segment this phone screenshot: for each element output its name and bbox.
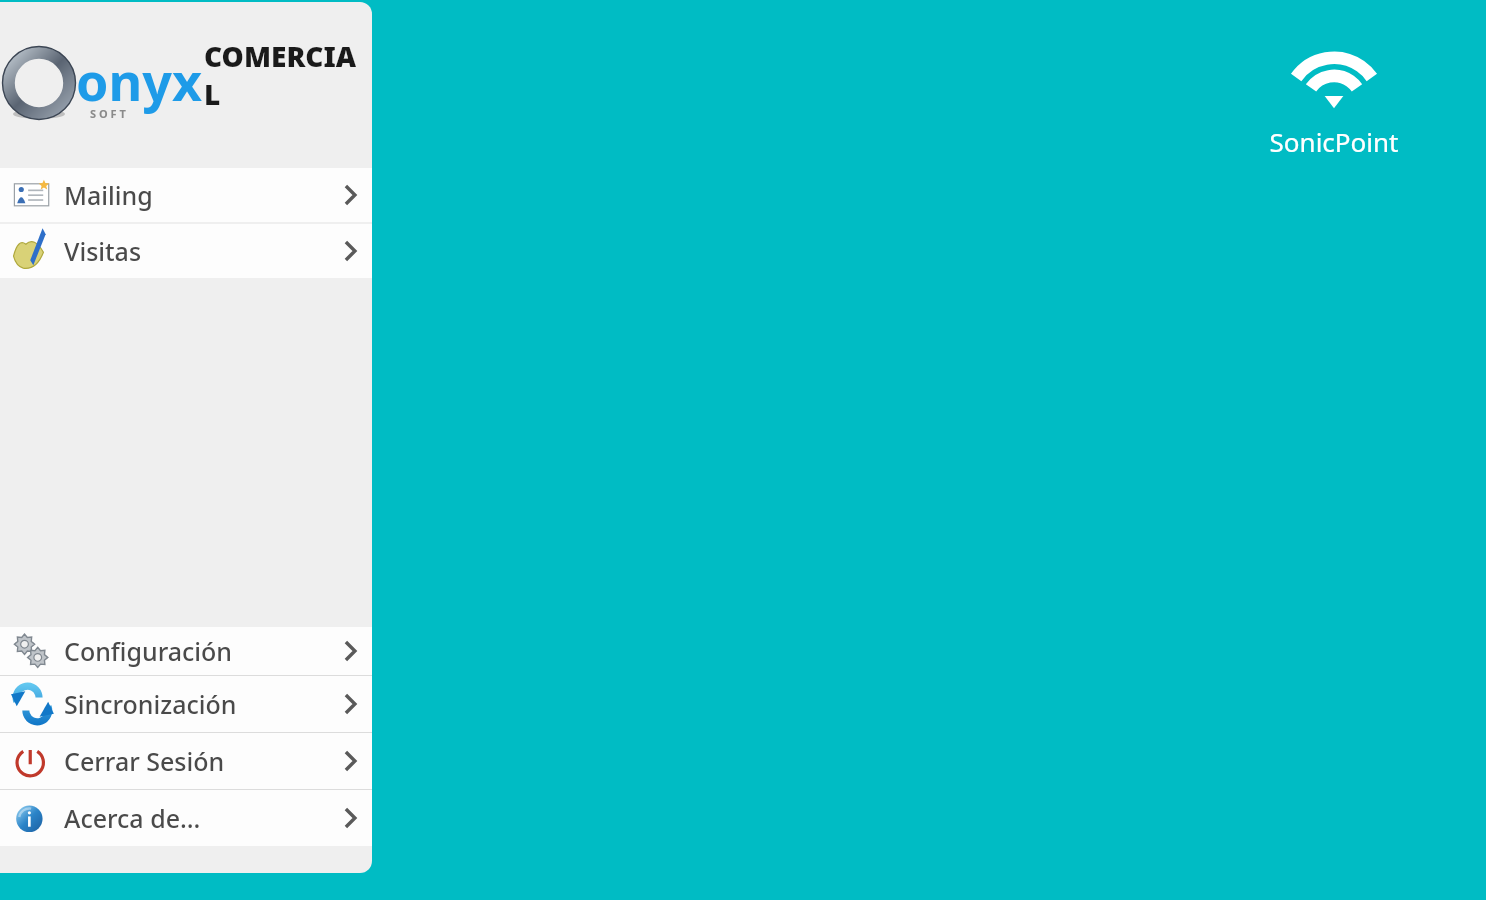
button[interactable]: Acerca de...	[0, 790, 372, 846]
staticText: Configuración	[64, 634, 233, 668]
staticText: Sincronización	[64, 687, 237, 721]
staticText: onyx	[76, 45, 203, 116]
button[interactable]: Sincronización	[0, 676, 372, 732]
button[interactable]: Mailing	[0, 168, 372, 222]
staticText: Cerrar Sesión	[64, 744, 225, 778]
staticText: Acerca de...	[64, 801, 201, 835]
staticText: S O F T	[90, 106, 126, 121]
button[interactable]: Cerrar Sesión	[0, 733, 372, 789]
staticText: SonicPoint	[1258, 124, 1410, 159]
button[interactable]: Configuración	[0, 627, 372, 675]
staticText: Visitas	[64, 234, 142, 268]
button[interactable]: SonicPoint wifi	[1258, 18, 1410, 159]
button[interactable]: Visitas	[0, 224, 372, 278]
staticText: COMERCIAL	[204, 37, 372, 113]
staticText: Mailing	[64, 178, 153, 212]
